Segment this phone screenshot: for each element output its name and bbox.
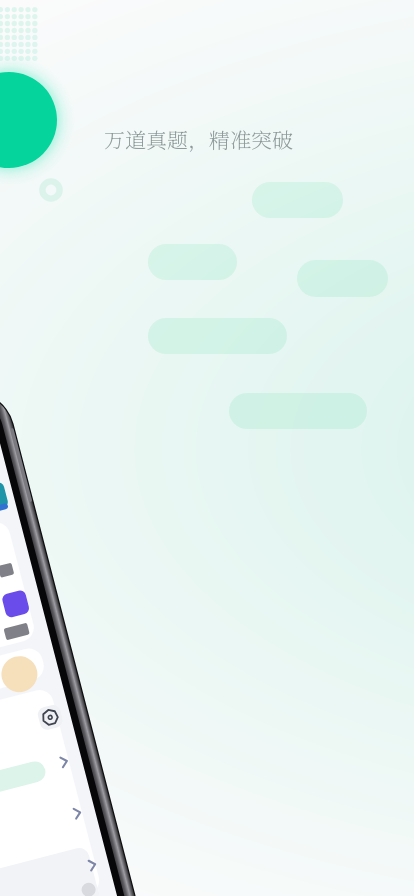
- staticText: 万道真题，精准突破: [104, 124, 293, 154]
